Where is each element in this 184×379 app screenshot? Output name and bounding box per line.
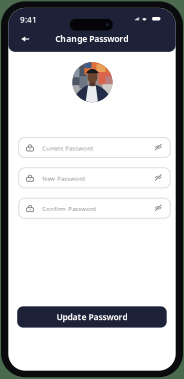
button[interactable]: Back xyxy=(16,30,34,48)
button[interactable]: New Password xyxy=(19,168,170,188)
staticText: New Password xyxy=(42,174,85,182)
staticText: Change Password xyxy=(55,33,128,45)
button[interactable]: Update Password xyxy=(17,306,167,328)
staticText: Update Password xyxy=(56,311,127,323)
button[interactable]: Current Password xyxy=(19,137,170,158)
staticText: Confirm Password xyxy=(42,205,96,213)
staticText: 9:41 xyxy=(20,14,37,25)
button[interactable]: Confirm Password xyxy=(19,198,170,218)
staticText: Current Password xyxy=(42,144,93,152)
